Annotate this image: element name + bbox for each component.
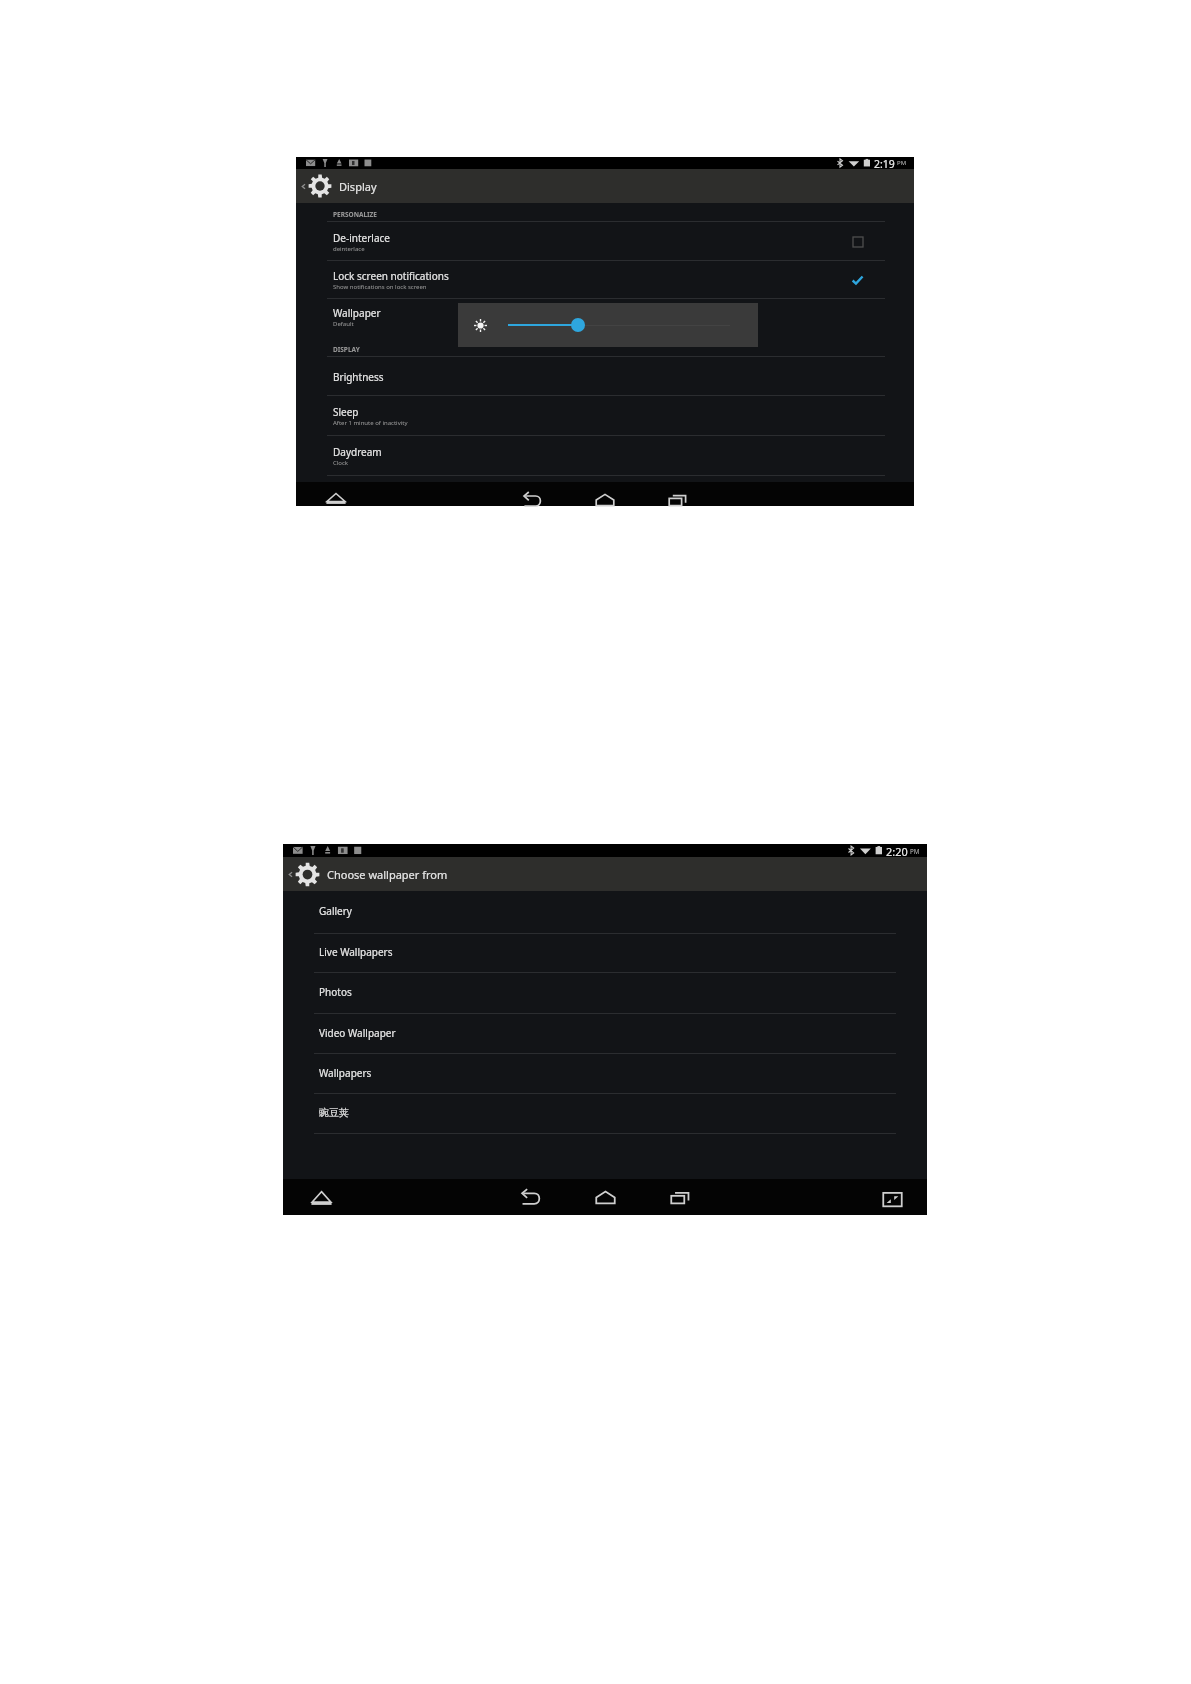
button[interactable]: Photos xyxy=(283,973,927,1014)
staticText: Show notifications on lock screen xyxy=(333,283,427,291)
button[interactable]: De-interlace xyxy=(296,222,914,261)
staticText: 2:20 xyxy=(886,844,908,857)
staticText: Clock xyxy=(333,459,349,467)
button[interactable]: Wallpapers xyxy=(283,1054,927,1094)
staticText: Lock screen notifications xyxy=(333,269,449,283)
staticText: Daydream xyxy=(333,445,382,459)
staticText: DISPLAY xyxy=(333,345,360,354)
button[interactable]: Menu xyxy=(311,1187,332,1208)
staticText: PERSONALIZE xyxy=(333,210,378,219)
button[interactable]: Live Wallpapers xyxy=(283,934,927,973)
staticText: Wallpaper xyxy=(333,306,381,320)
button[interactable]: Daydream xyxy=(296,436,914,476)
button[interactable]: Lock screen notifications xyxy=(296,261,914,299)
button[interactable]: Home xyxy=(595,490,615,510)
staticText: 2:19 xyxy=(874,157,895,169)
staticText: Live Wallpapers xyxy=(319,945,393,959)
staticText: PM xyxy=(910,847,920,855)
staticText: Default xyxy=(333,320,354,328)
button[interactable]: Expand to full screen xyxy=(882,1187,903,1208)
button[interactable]: Menu xyxy=(326,490,346,506)
button[interactable]: Recent apps xyxy=(668,490,688,510)
button[interactable]: Gallery xyxy=(283,891,927,934)
other: Navigate up xyxy=(300,183,307,190)
button[interactable]: Navigate up xyxy=(283,857,927,891)
staticText: Brightness xyxy=(333,370,384,384)
staticText: De-interlace xyxy=(333,231,390,245)
button[interactable]: Back xyxy=(520,1187,541,1208)
staticText: Video Wallpaper xyxy=(319,1026,396,1040)
staticText: Wallpapers xyxy=(319,1066,372,1080)
button[interactable]: Recent apps xyxy=(670,1187,691,1208)
other: Navigate up xyxy=(287,871,294,878)
staticText: Choose wallpaper from xyxy=(327,867,448,882)
button[interactable]: Brightness xyxy=(296,357,914,396)
staticText: 豌豆荚 xyxy=(319,1106,349,1119)
button[interactable]: Sleep xyxy=(296,396,914,436)
staticText: deinterlace xyxy=(333,245,365,253)
button[interactable]: 豌豆荚 xyxy=(283,1094,927,1134)
button[interactable]: Video Wallpaper xyxy=(283,1014,927,1054)
staticText: Photos xyxy=(319,985,352,999)
button[interactable]: Home xyxy=(595,1187,616,1208)
staticText: PM xyxy=(897,159,907,167)
button[interactable]: Wallpaper xyxy=(296,299,914,335)
button[interactable] xyxy=(458,303,758,347)
staticText: Sleep xyxy=(333,405,359,419)
staticText: Gallery xyxy=(319,904,352,918)
button[interactable]: Navigate up xyxy=(296,169,914,203)
staticText: After 1 minute of inactivity xyxy=(333,419,408,427)
button[interactable]: Back xyxy=(522,490,542,510)
staticText: Display xyxy=(339,179,377,194)
